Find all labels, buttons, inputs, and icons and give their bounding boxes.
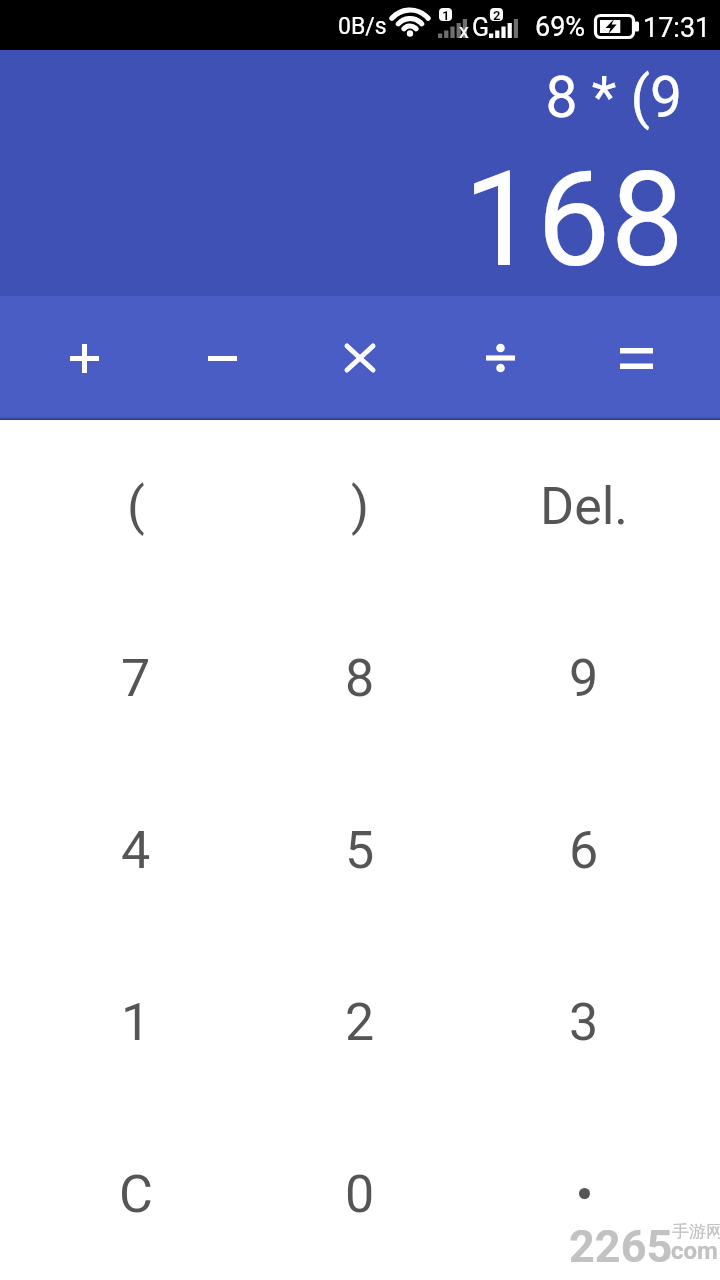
button[interactable]: 0: [248, 1108, 472, 1280]
staticText: 手游网: [672, 1221, 720, 1242]
staticText: 3: [569, 992, 599, 1053]
staticText: 69%: [535, 11, 586, 43]
staticText: 2: [493, 8, 501, 21]
button[interactable]: Divide: [429, 296, 567, 420]
button[interactable]: 3: [472, 936, 696, 1108]
staticText: 8 * (9: [545, 64, 682, 131]
staticText: G: [472, 13, 490, 42]
other: Wi-Fi signal: [391, 8, 429, 40]
staticText: x: [459, 19, 469, 42]
staticText: 0: [345, 1164, 375, 1225]
staticText: 7: [121, 648, 151, 709]
button[interactable]: 2: [248, 936, 472, 1108]
button[interactable]: Del.: [472, 420, 696, 592]
other: SIM 2 mobile signal: [472, 7, 517, 45]
staticText: 168: [463, 143, 684, 297]
staticText: 9: [569, 648, 599, 709]
staticText: 1: [121, 992, 151, 1053]
other: Battery charging 69 percent: [594, 14, 640, 39]
button[interactable]: 5: [248, 764, 472, 936]
button[interactable]: Decimal point: [472, 1108, 696, 1280]
button[interactable]: ): [248, 420, 472, 592]
button[interactable]: 7: [24, 592, 248, 764]
staticText: 1: [442, 8, 450, 21]
staticText: 17:31: [643, 12, 711, 44]
button[interactable]: 8: [248, 592, 472, 764]
staticText: 5: [345, 820, 375, 881]
button[interactable]: 1: [24, 936, 248, 1108]
button[interactable]: 6: [472, 764, 696, 936]
staticText: (: [127, 476, 145, 537]
button[interactable]: 9: [472, 592, 696, 764]
button[interactable]: Multiply: [291, 296, 429, 420]
staticText: Del.: [540, 476, 629, 537]
button[interactable]: Plus: [15, 296, 153, 420]
staticText: 0B/s: [338, 13, 387, 40]
button[interactable]: (: [24, 420, 248, 592]
staticText: .com: [664, 1237, 718, 1265]
staticText: 6: [569, 820, 599, 881]
staticText: ): [351, 476, 370, 537]
staticText: 2265: [569, 1220, 673, 1273]
other: SIM 1 no service: [437, 7, 467, 45]
button[interactable]: C: [24, 1108, 248, 1280]
button[interactable]: Minus: [153, 296, 291, 420]
button[interactable]: 4: [24, 764, 248, 936]
staticText: C: [119, 1164, 153, 1225]
staticText: 2: [345, 992, 375, 1053]
button[interactable]: Equals: [567, 296, 705, 420]
staticText: 4: [121, 820, 151, 881]
staticText: 8: [345, 648, 375, 709]
